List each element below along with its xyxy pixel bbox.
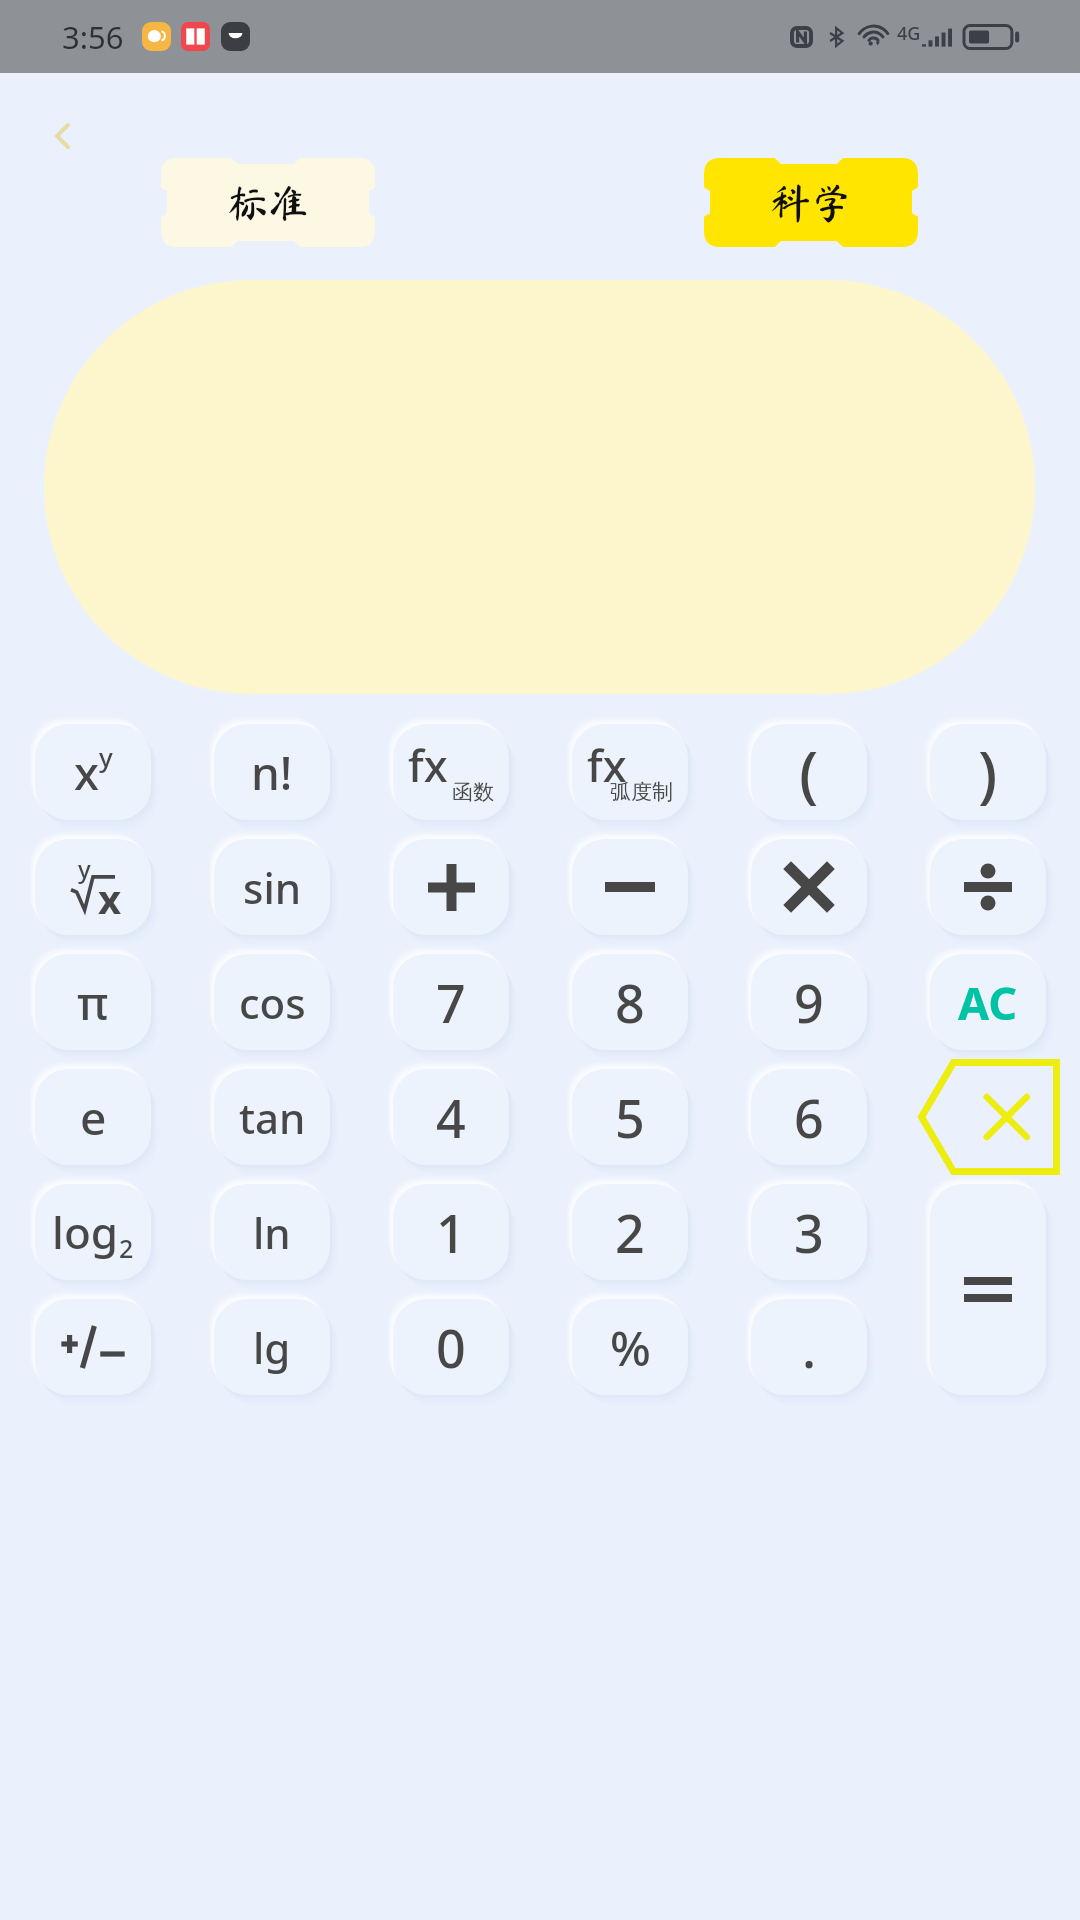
button[interactable]: π — [35, 954, 151, 1050]
button[interactable]: lg — [214, 1299, 330, 1395]
staticText: % — [610, 1315, 651, 1380]
staticText: y — [78, 852, 91, 885]
button[interactable]: sin — [214, 839, 330, 935]
staticText: ( — [799, 730, 819, 814]
staticText: fx — [587, 735, 627, 795]
button[interactable]: Multiply — [751, 839, 867, 935]
button[interactable]: 6 — [751, 1069, 867, 1165]
staticText: tan — [239, 1089, 306, 1146]
staticText: x — [74, 741, 99, 804]
button[interactable]: 3 — [751, 1184, 867, 1280]
staticText: 7 — [436, 967, 466, 1038]
button[interactable]: 5 — [572, 1069, 688, 1165]
button[interactable]: ( — [751, 724, 867, 820]
button[interactable]: Minus — [572, 839, 688, 935]
button[interactable]: n! — [214, 724, 330, 820]
staticText: ln — [253, 1204, 291, 1261]
button[interactable]: 8 — [572, 954, 688, 1050]
staticText: 9 — [794, 967, 824, 1038]
staticText: . — [802, 1312, 817, 1383]
staticText: 3 — [794, 1197, 824, 1268]
staticText: ) — [978, 730, 998, 814]
staticText: sin — [243, 859, 302, 916]
button[interactable]: tan — [214, 1069, 330, 1165]
button[interactable]: y-th root of x — [35, 839, 151, 935]
button[interactable]: Plus — [393, 839, 509, 935]
staticText: n! — [251, 741, 293, 804]
button[interactable]: x — [35, 724, 151, 820]
button[interactable]: log — [35, 1184, 151, 1280]
staticText: 科学 — [770, 182, 852, 223]
staticText: 弧度制 — [610, 779, 673, 805]
button[interactable]: 9 — [751, 954, 867, 1050]
button[interactable]: 0 — [393, 1299, 509, 1395]
staticText: 0 — [436, 1312, 466, 1383]
staticText: AC — [958, 972, 1018, 1033]
button[interactable]: 科学 — [704, 158, 918, 247]
button[interactable]: Equals — [930, 1184, 1046, 1395]
button[interactable]: 2 — [572, 1184, 688, 1280]
button[interactable]: AC — [930, 954, 1046, 1050]
staticText: π — [77, 971, 109, 1034]
staticText: cos — [239, 974, 306, 1031]
button[interactable]: 4 — [393, 1069, 509, 1165]
staticText: 2 — [119, 1231, 134, 1265]
button[interactable]: 1 — [393, 1184, 509, 1280]
staticText: 5 — [615, 1082, 645, 1153]
staticText: 6 — [794, 1082, 824, 1153]
button[interactable]: Divide — [930, 839, 1046, 935]
staticText: 4 — [436, 1082, 466, 1153]
staticText: 1 — [436, 1197, 466, 1268]
button[interactable]: . — [751, 1299, 867, 1395]
button[interactable]: Delete — [918, 1059, 1060, 1175]
button[interactable]: 标准 — [161, 158, 375, 247]
button[interactable]: Function — [393, 724, 509, 820]
button[interactable]: % — [572, 1299, 688, 1395]
button[interactable]: ) — [930, 724, 1046, 820]
staticText: 2 — [615, 1197, 645, 1268]
staticText: 标准 — [227, 182, 309, 223]
staticText: 函数 — [452, 779, 494, 805]
staticText: log — [52, 1202, 119, 1262]
button[interactable]: ln — [214, 1184, 330, 1280]
staticText: e — [80, 1086, 107, 1149]
button[interactable]: 7 — [393, 954, 509, 1050]
staticText: x — [98, 871, 122, 917]
button[interactable]: Plus minus sign — [35, 1299, 151, 1395]
staticText: fx — [408, 735, 448, 795]
staticText: 4G — [897, 21, 921, 46]
button[interactable]: Back — [36, 110, 88, 162]
staticText: lg — [253, 1319, 291, 1376]
button[interactable]: Function — [572, 724, 688, 820]
staticText: y — [99, 739, 113, 774]
button[interactable]: cos — [214, 954, 330, 1050]
button[interactable]: e — [35, 1069, 151, 1165]
staticText: 8 — [615, 967, 645, 1038]
staticText: 3:56 — [62, 16, 124, 58]
